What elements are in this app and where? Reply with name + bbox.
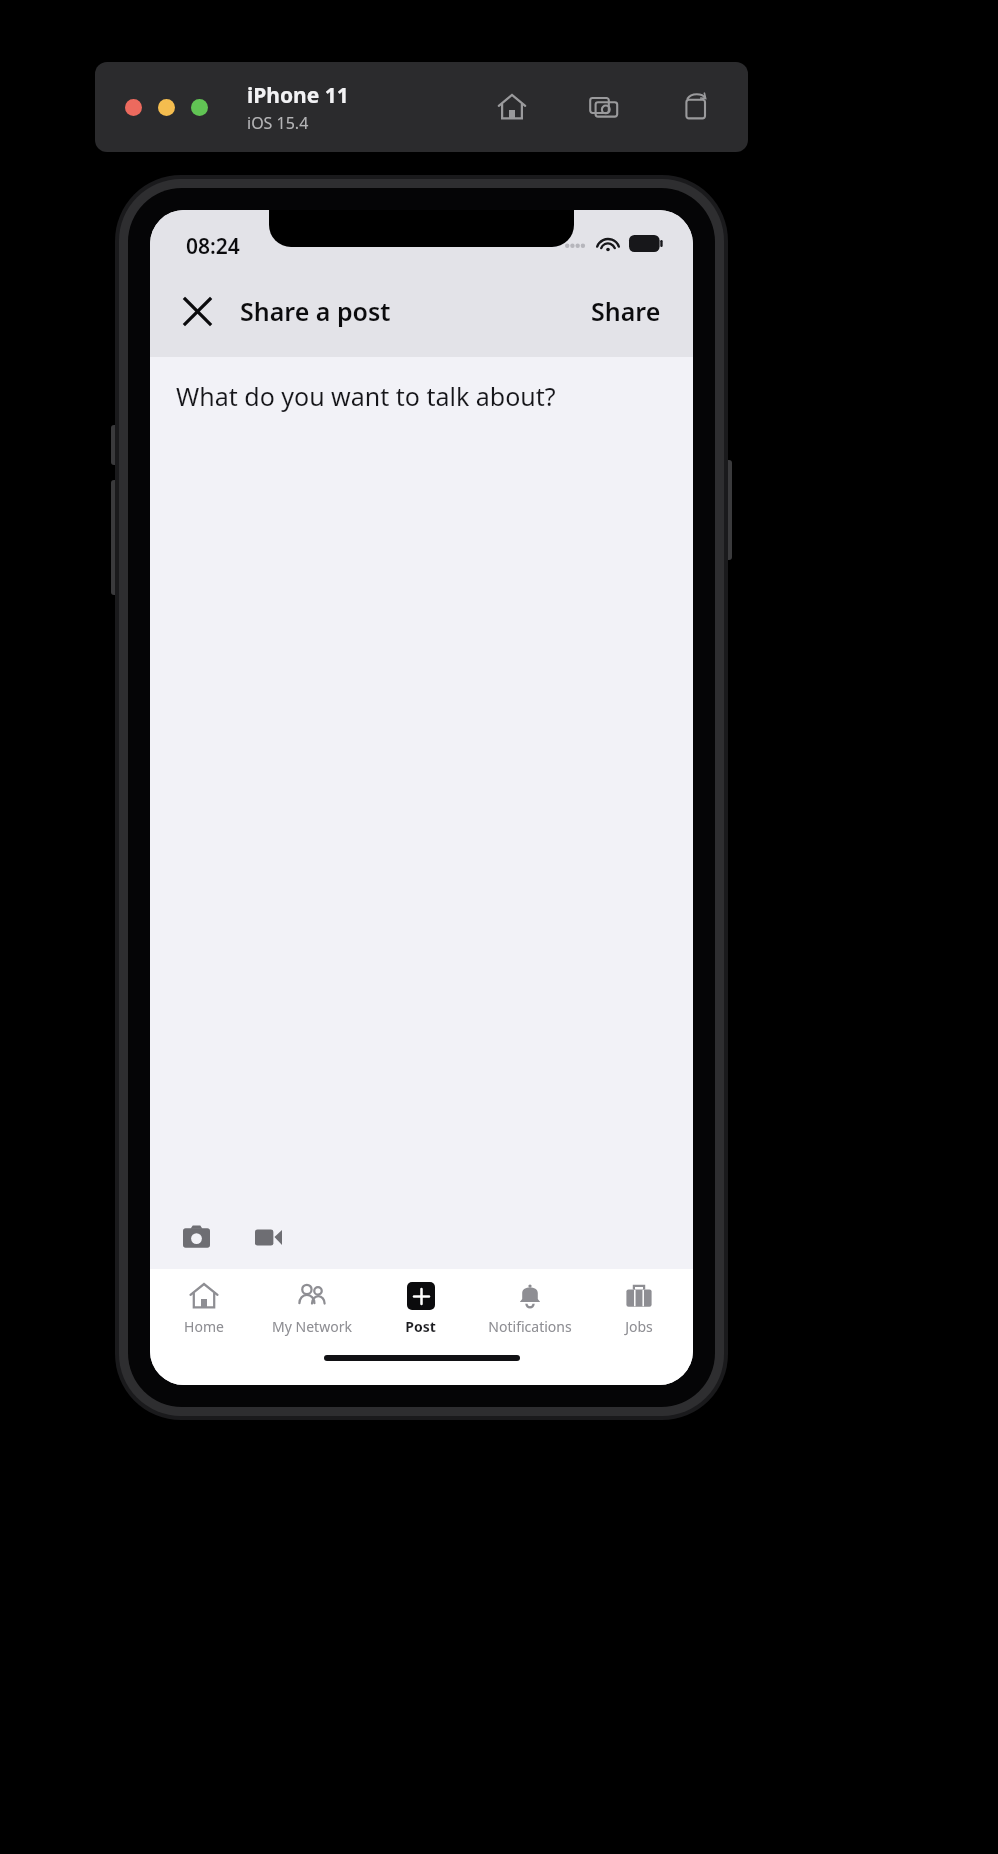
button[interactable]: Post	[366, 1269, 475, 1355]
button[interactable]: My Network	[258, 1269, 366, 1355]
staticText: Home	[184, 1317, 224, 1336]
staticText: Notifications	[488, 1317, 572, 1336]
button[interactable]: Rotate	[674, 85, 718, 129]
staticText: Share a post	[240, 294, 391, 328]
button[interactable]: Close	[174, 288, 220, 334]
button[interactable]: Screenshot	[582, 85, 626, 129]
button[interactable]: Home	[490, 85, 534, 129]
button[interactable]: Home	[150, 1269, 258, 1355]
button[interactable]: Add video	[246, 1215, 290, 1259]
button[interactable]: Close	[125, 99, 142, 116]
staticText: What do you want to talk about?	[176, 379, 556, 413]
button[interactable]: What do you want to talk about?	[176, 379, 667, 413]
staticText: My Network	[272, 1317, 352, 1336]
staticText: Post	[405, 1317, 436, 1336]
staticText: iPhone 11	[247, 81, 349, 110]
staticText: 08:24	[186, 232, 240, 261]
button[interactable]: Minimize	[158, 99, 175, 116]
staticText: Share	[591, 294, 661, 328]
button[interactable]: Add photo	[174, 1215, 218, 1259]
staticText: Jobs	[625, 1317, 653, 1336]
button[interactable]: Share	[583, 288, 669, 334]
button[interactable]: Notifications	[475, 1269, 584, 1355]
button[interactable]: Jobs	[584, 1269, 693, 1355]
staticText: iOS 15.4	[247, 112, 309, 134]
button[interactable]: Zoom	[191, 99, 208, 116]
